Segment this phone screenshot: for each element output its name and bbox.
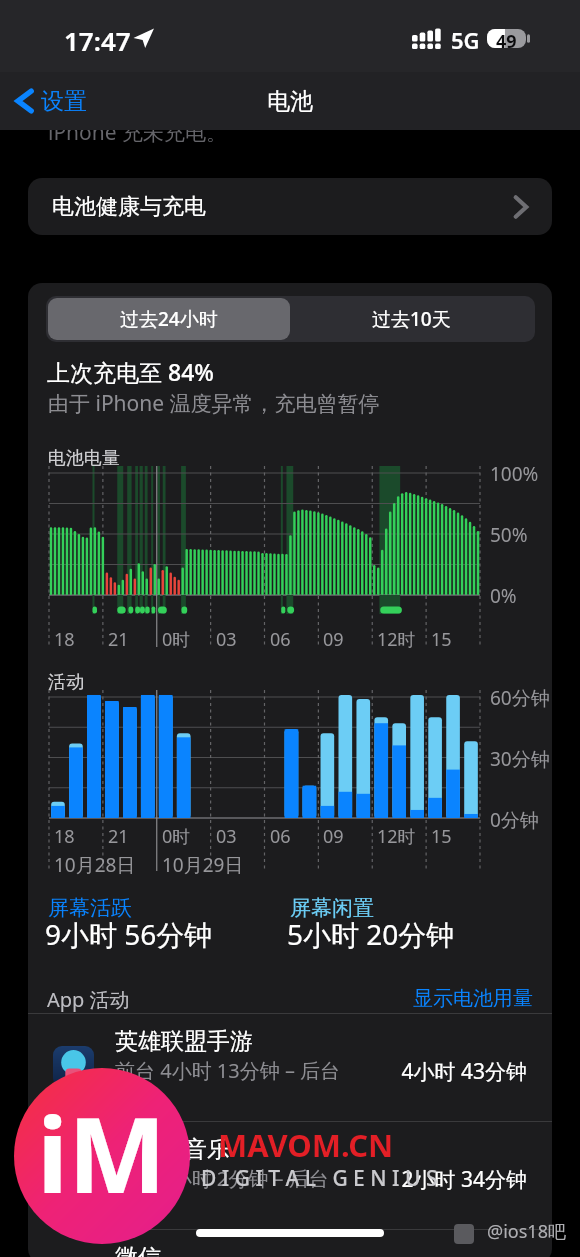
staticText: 30分钟: [490, 746, 550, 772]
staticText: 屏幕活跃: [48, 895, 132, 921]
staticText: 12时: [377, 627, 416, 652]
button[interactable]: 网易云音乐: [28, 1121, 552, 1229]
button[interactable]: 显示电池用量: [413, 986, 533, 1011]
staticText: 09: [323, 627, 344, 652]
staticText: 49: [496, 29, 517, 48]
staticText: 15: [431, 824, 452, 849]
staticText: 电池电量: [48, 447, 120, 470]
button[interactable]: 过去24小时: [48, 298, 290, 340]
staticText: 0%: [490, 583, 517, 609]
staticText: 0时: [162, 824, 191, 849]
staticText: App 活动: [47, 986, 130, 1013]
staticText: MAVOM.CN: [218, 1124, 394, 1166]
staticText: 0分钟: [490, 807, 539, 833]
staticText: 06: [270, 627, 291, 652]
staticText: 过去24小时: [120, 306, 218, 332]
staticText: 12时: [377, 824, 416, 849]
staticText: 上次充电至 84%: [47, 356, 214, 387]
staticText: 09: [323, 824, 344, 849]
staticText: iPhone 充未充电。: [48, 118, 228, 147]
staticText: 屏幕闲置: [290, 895, 374, 921]
staticText: 2小时 34分钟: [328, 1165, 527, 1194]
staticText: 10月29日: [162, 852, 244, 878]
button[interactable]: 电池健康与充电: [28, 178, 552, 235]
staticText: 60分钟: [490, 685, 550, 711]
staticText: 前台 4小时 13分钟 – 后台: [115, 1057, 341, 1084]
staticText: 9小时 56分钟: [45, 915, 213, 953]
staticText: 06: [270, 824, 291, 849]
staticText: 21: [108, 627, 129, 652]
staticText: 17:47: [64, 23, 131, 58]
button[interactable]: 设置: [12, 72, 112, 130]
staticText: 由于 iPhone 温度异常，充电曾暂停: [48, 389, 380, 418]
staticText: D I G I T A L G E N I U S: [201, 1164, 438, 1193]
staticText: 5小时 20分钟: [287, 915, 455, 953]
staticText: 18: [54, 824, 75, 849]
staticText: 03: [216, 824, 237, 849]
staticText: 设置: [41, 87, 87, 116]
staticText: 电池: [267, 87, 313, 116]
staticText: 10月28日: [54, 852, 136, 878]
staticText: iM: [37, 1082, 167, 1224]
staticText: 4小时 43分钟: [328, 1057, 527, 1086]
staticText: 15: [431, 627, 452, 652]
staticText: 电池健康与充电: [52, 193, 206, 221]
staticText: 50%: [490, 522, 528, 548]
staticText: 21: [108, 824, 129, 849]
staticText: 0时: [162, 627, 191, 652]
button[interactable]: 微信: [28, 1229, 552, 1257]
staticText: 100%: [490, 461, 539, 487]
staticText: 微信: [115, 1243, 161, 1257]
staticText: 英雄联盟手游: [115, 1027, 253, 1056]
button[interactable]: 英雄联盟手游: [28, 1013, 552, 1121]
staticText: @ios18吧: [487, 1219, 566, 1244]
staticText: 前台 1小时 2分钟 – 后台: [115, 1165, 329, 1192]
staticText: 网易云音乐: [115, 1135, 230, 1164]
button[interactable]: 过去10天: [290, 298, 533, 340]
staticText: 5G: [451, 25, 480, 55]
staticText: 03: [216, 627, 237, 652]
staticText: 活动: [48, 671, 84, 694]
staticText: 18: [54, 627, 75, 652]
staticText: 过去10天: [372, 306, 451, 332]
